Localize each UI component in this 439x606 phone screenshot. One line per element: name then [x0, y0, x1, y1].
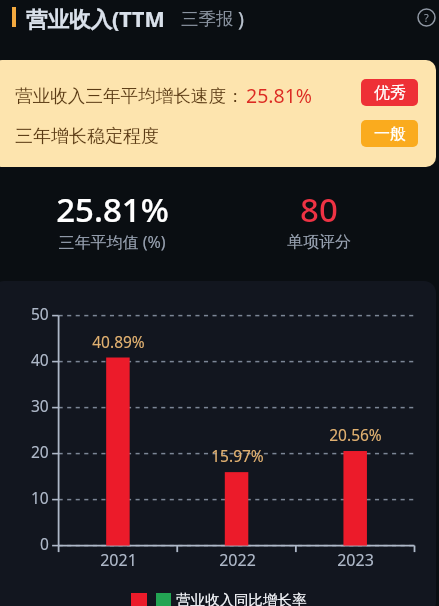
- staticText: ?: [424, 10, 429, 25]
- button[interactable]: 营业收入同比增长率: [131, 591, 307, 606]
- staticText: 三年增长稳定程度: [15, 125, 159, 148]
- staticText: 优秀: [374, 83, 406, 103]
- button[interactable]: 优秀: [361, 79, 418, 106]
- staticText: 三年平均值 (%): [58, 231, 166, 253]
- staticText: 20: [31, 441, 49, 462]
- staticText: 40: [31, 349, 49, 370]
- staticText: 营业收入(TTM: [26, 4, 165, 33]
- staticText: 一般: [374, 124, 406, 144]
- button[interactable]: 25.81%: [22, 187, 202, 257]
- staticText: 10: [31, 487, 49, 508]
- staticText: ): [238, 5, 244, 32]
- button[interactable]: 80: [229, 187, 409, 257]
- staticText: 25.81%: [246, 82, 313, 109]
- staticText: 2022: [219, 549, 256, 571]
- staticText: 25.81%: [56, 187, 169, 223]
- staticText: 15.97%: [211, 445, 264, 466]
- staticText: 2023: [337, 549, 374, 571]
- staticText: 40.89%: [92, 331, 145, 352]
- staticText: 单项评分: [287, 232, 351, 252]
- staticText: 营业收入三年平均增长速度：: [15, 85, 244, 107]
- staticText: 20.56%: [329, 424, 382, 445]
- button[interactable]: Help: [411, 2, 439, 32]
- staticText: 三季报: [181, 8, 234, 30]
- button[interactable]: 一般: [361, 120, 418, 147]
- staticText: 50: [31, 303, 49, 324]
- staticText: 30: [31, 395, 49, 416]
- staticText: 营业收入同比增长率: [176, 591, 307, 606]
- staticText: 0: [40, 533, 49, 554]
- staticText: 80: [300, 187, 338, 223]
- staticText: 2021: [100, 549, 137, 571]
